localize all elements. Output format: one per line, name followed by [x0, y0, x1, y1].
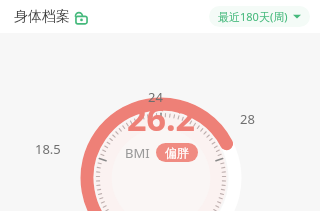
button[interactable]: 身体档案 — [14, 8, 89, 26]
staticText: 26.2 — [127, 95, 195, 141]
staticText: 偏胖 — [165, 145, 189, 160]
button[interactable]: 最近180天(周) — [209, 6, 310, 27]
button[interactable]: Privacy lock — [74, 10, 89, 25]
staticText: 28 — [240, 110, 255, 128]
staticText: 24 — [148, 88, 163, 106]
staticText: 最近180天(周) — [218, 9, 288, 24]
staticText: 18.5 — [35, 140, 61, 158]
staticText: 身体档案 — [14, 8, 70, 26]
staticText: BMI — [125, 144, 150, 162]
button[interactable]: 偏胖 — [156, 143, 198, 162]
